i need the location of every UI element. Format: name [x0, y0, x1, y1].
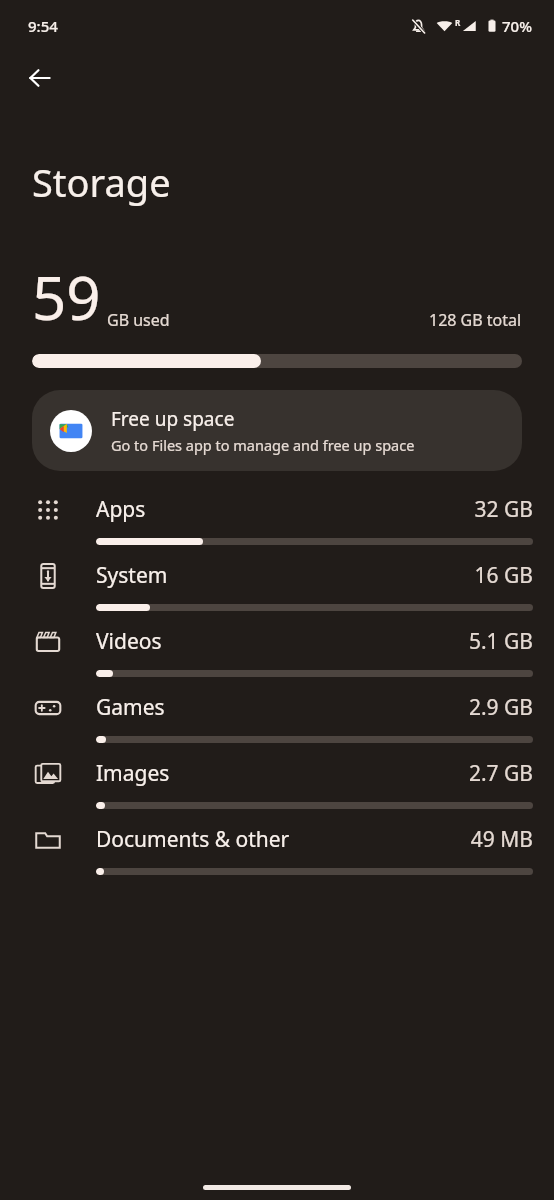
- button[interactable]: Games: [0, 683, 554, 749]
- staticText: 70%: [502, 16, 532, 36]
- staticText: 2.7 GB: [468, 759, 533, 788]
- staticText: Images: [96, 759, 170, 788]
- staticText: Videos: [96, 627, 162, 656]
- button[interactable]: Documents & other: [0, 815, 554, 881]
- staticText: Documents & other: [96, 825, 290, 854]
- button[interactable]: Images: [0, 749, 554, 815]
- staticText: R: [455, 17, 461, 28]
- staticText: 16 GB: [474, 561, 533, 590]
- button[interactable]: Apps: [0, 485, 554, 551]
- button[interactable]: Videos: [0, 617, 554, 683]
- staticText: 128 GB total: [429, 309, 522, 331]
- staticText: 9:54: [28, 16, 58, 36]
- staticText: Apps: [96, 495, 146, 524]
- staticText: Games: [96, 693, 165, 722]
- staticText: GB used: [107, 309, 170, 331]
- button[interactable]: System: [0, 551, 554, 617]
- button[interactable]: Free up space: [32, 390, 522, 471]
- staticText: Go to Files app to manage and free up sp…: [111, 435, 415, 455]
- staticText: 32 GB: [474, 495, 533, 524]
- staticText: Storage: [32, 156, 171, 208]
- staticText: 5.1 GB: [468, 627, 533, 656]
- staticText: 2.9 GB: [468, 693, 533, 722]
- staticText: Free up space: [111, 406, 235, 432]
- staticText: 49 MB: [470, 825, 533, 854]
- staticText: System: [96, 561, 168, 590]
- staticText: 59: [32, 256, 101, 338]
- button[interactable]: Back: [14, 52, 66, 104]
